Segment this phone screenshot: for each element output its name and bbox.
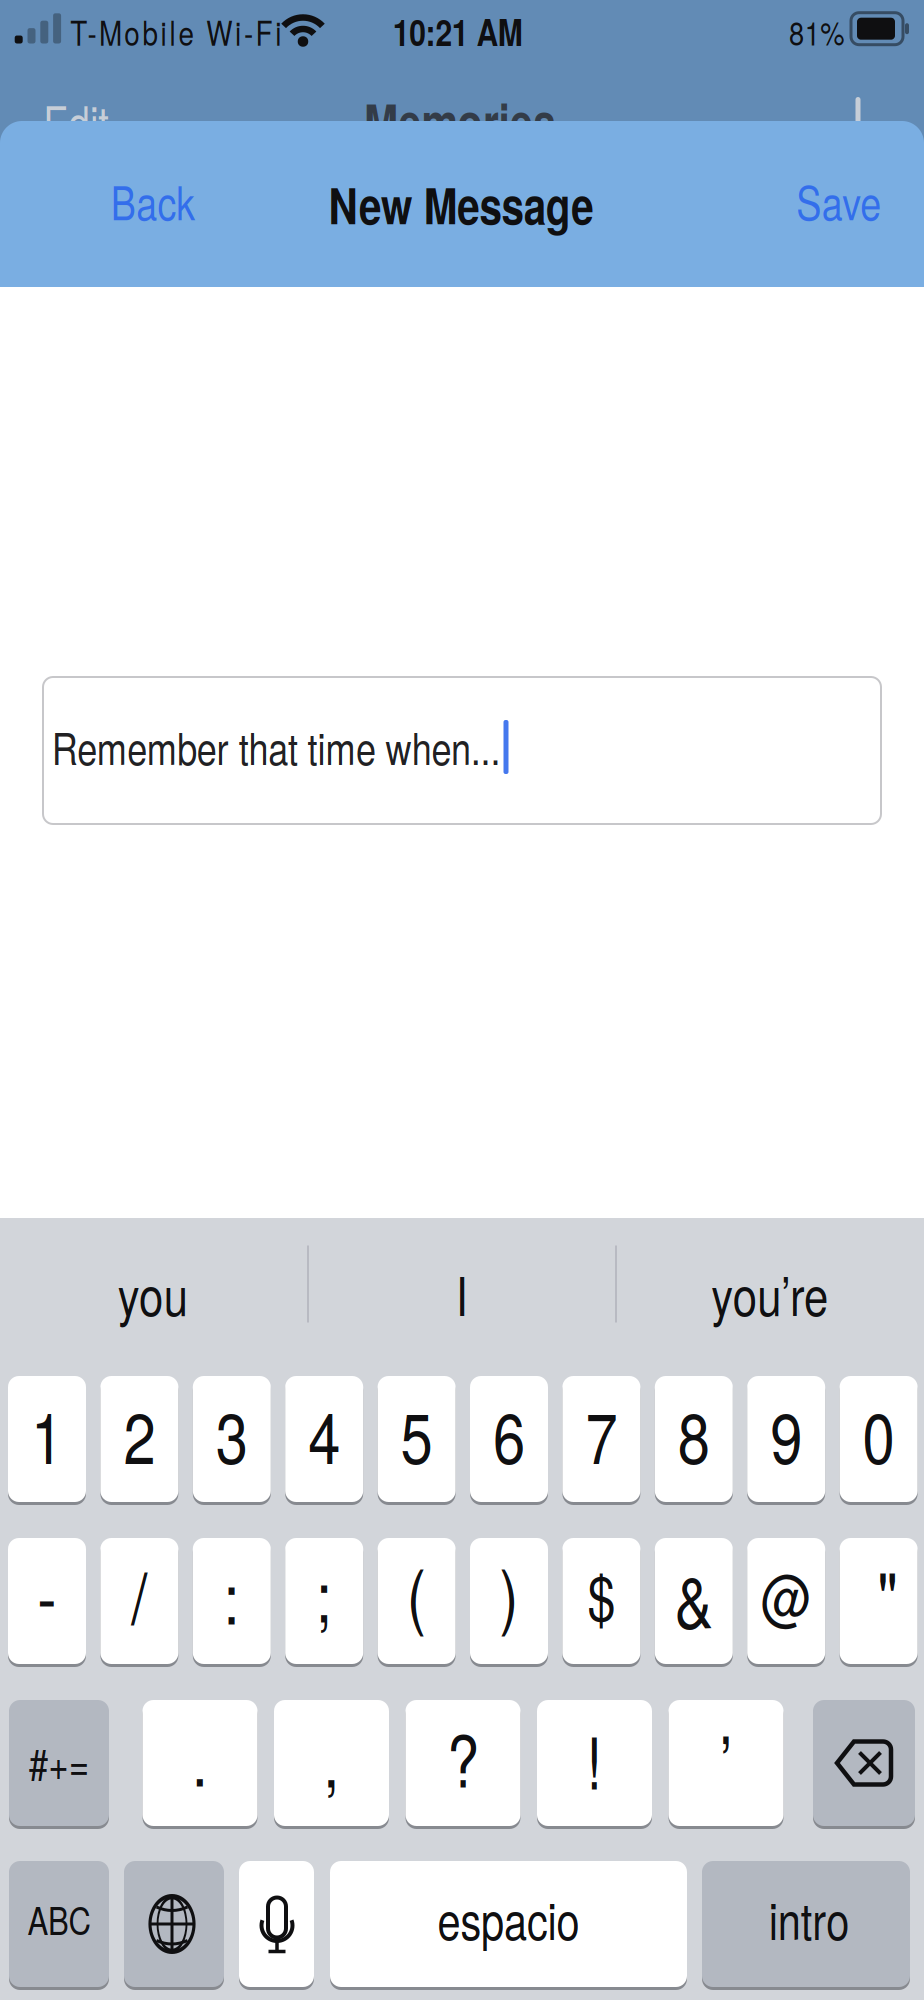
button[interactable]: - — [8, 1536, 86, 1666]
button[interactable]: 8 — [655, 1374, 733, 1504]
staticText: 8 — [674, 1383, 713, 1484]
staticText: you’re — [698, 1255, 841, 1331]
staticText: $ — [584, 1550, 618, 1638]
button[interactable]: " — [840, 1536, 918, 1666]
staticText: ? — [443, 1706, 482, 1808]
staticText: 0 — [859, 1383, 898, 1484]
staticText: & — [670, 1547, 717, 1648]
staticText: . — [190, 1705, 210, 1807]
button[interactable]: 7 — [562, 1374, 640, 1504]
staticText: 5 — [397, 1383, 436, 1484]
staticText: 2 — [120, 1383, 159, 1484]
staticText: Memories — [343, 84, 577, 156]
button[interactable]: / — [100, 1536, 178, 1666]
button[interactable]: 5 — [378, 1374, 456, 1504]
button[interactable]: ; — [285, 1536, 363, 1666]
button[interactable]: & — [655, 1536, 733, 1666]
button[interactable]: Save — [754, 145, 924, 255]
button[interactable]: Back — [68, 145, 238, 255]
staticText: " — [875, 1542, 900, 1644]
button[interactable]: : — [193, 1536, 271, 1666]
staticText: Save — [787, 168, 891, 233]
staticText: 10:21 AM — [378, 5, 537, 57]
staticText: 4 — [305, 1383, 344, 1484]
button[interactable]: you — [3, 1238, 303, 1348]
button[interactable]: . — [142, 1698, 257, 1828]
staticText: I — [454, 1255, 469, 1331]
button[interactable]: ) — [470, 1536, 548, 1666]
button[interactable]: @ — [747, 1536, 825, 1666]
staticText: / — [129, 1543, 149, 1645]
staticText: intro — [760, 1882, 858, 1954]
button[interactable]: ! — [537, 1698, 652, 1828]
button[interactable]: ( — [378, 1536, 456, 1666]
staticText: 9 — [767, 1383, 806, 1484]
button[interactable]: intro — [702, 1859, 910, 1989]
button[interactable]: Next keyboard — [124, 1859, 224, 1989]
button[interactable]: 1 — [8, 1374, 86, 1504]
button[interactable]: 2 — [100, 1374, 178, 1504]
staticText: espacio — [422, 1882, 595, 1954]
staticText: New Message — [299, 169, 622, 239]
button[interactable]: 9 — [747, 1374, 825, 1504]
staticText: ; — [314, 1541, 334, 1643]
staticText: @ — [755, 1550, 817, 1638]
button[interactable]: 4 — [285, 1374, 363, 1504]
button[interactable]: Delete — [813, 1698, 915, 1828]
staticText: : — [222, 1543, 242, 1645]
staticText: ’ — [718, 1707, 734, 1809]
staticText: 1 — [27, 1383, 66, 1484]
button[interactable]: $ — [562, 1536, 640, 1666]
staticText: 7 — [582, 1383, 621, 1484]
staticText: Edit — [36, 87, 116, 153]
button[interactable]: ABC — [9, 1859, 109, 1989]
staticText: , — [321, 1706, 341, 1808]
button[interactable]: , — [274, 1698, 389, 1828]
staticText: ABC — [20, 1891, 97, 1946]
button[interactable]: 0 — [840, 1374, 918, 1504]
staticText: ( — [405, 1540, 429, 1642]
button[interactable]: ? — [405, 1698, 520, 1828]
button[interactable]: #+= — [9, 1698, 109, 1828]
button[interactable]: 3 — [193, 1374, 271, 1504]
staticText: 3 — [212, 1383, 251, 1484]
button[interactable]: you’re — [620, 1238, 920, 1348]
staticText: Back — [101, 168, 204, 233]
button[interactable]: espacio — [330, 1859, 687, 1989]
button[interactable]: Message text — [43, 677, 881, 824]
button[interactable]: ’ — [668, 1698, 783, 1828]
staticText: T-Mobile Wi-Fi — [47, 7, 305, 55]
button[interactable]: Dictate — [239, 1859, 314, 1989]
button[interactable]: 6 — [470, 1374, 548, 1504]
staticText: ) — [497, 1540, 521, 1642]
staticText: 81% — [783, 7, 851, 55]
staticText: Remember that time when... — [2, 714, 549, 777]
staticText: you — [110, 1255, 196, 1331]
staticText: ! — [584, 1708, 604, 1810]
staticText: #+= — [22, 1731, 96, 1792]
staticText: 6 — [489, 1383, 528, 1484]
staticText: - — [35, 1542, 59, 1644]
button[interactable]: I — [312, 1238, 612, 1348]
